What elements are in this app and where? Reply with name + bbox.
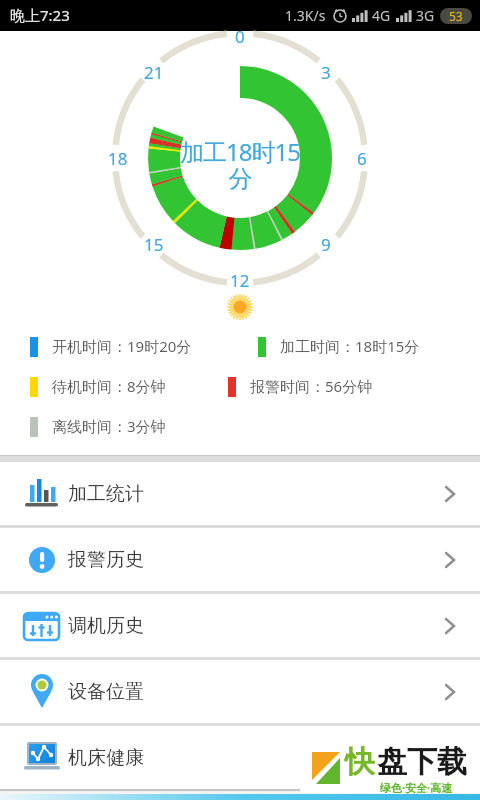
staticText: 1.3K/s xyxy=(285,6,326,25)
button[interactable]: 加工统计 xyxy=(0,462,480,525)
staticText: 加工18时15 分 xyxy=(180,135,300,194)
staticText: 报警历史 xyxy=(68,548,144,572)
staticText: 21 xyxy=(144,61,164,84)
staticText: 盘下载 xyxy=(377,743,467,781)
staticText: 开机时间：19时20分 xyxy=(52,336,192,356)
staticText: 快 xyxy=(345,743,375,781)
staticText: 待机时间：8分钟 xyxy=(52,376,166,396)
button[interactable]: 设备位置 xyxy=(0,660,480,723)
staticText: 18 xyxy=(108,147,128,170)
staticText: 报警时间：56分钟 xyxy=(250,376,373,396)
staticText: 调机历史 xyxy=(68,614,144,638)
staticText: 离线时间：3分钟 xyxy=(52,416,166,436)
staticText: 53 xyxy=(449,8,463,24)
staticText: 绿色·安全·高速 xyxy=(380,780,453,795)
button[interactable]: 报警历史 xyxy=(0,528,480,591)
staticText: 3 xyxy=(321,61,331,84)
staticText: 12 xyxy=(230,269,250,292)
button[interactable]: 调机历史 xyxy=(0,594,480,657)
staticText: 9 xyxy=(321,233,331,256)
staticText: 3G xyxy=(416,6,435,25)
button[interactable]: 机床健康 xyxy=(0,726,480,789)
staticText: 15 xyxy=(144,233,164,256)
staticText: 0 xyxy=(235,25,245,48)
staticText: 机床健康 xyxy=(68,746,144,770)
staticText: 加工时间：18时15分 xyxy=(280,336,420,356)
staticText: 设备位置 xyxy=(68,680,144,704)
staticText: 晚上7:23 xyxy=(10,5,70,25)
staticText: 4G xyxy=(372,6,391,25)
staticText: 加工统计 xyxy=(68,482,144,506)
staticText: 6 xyxy=(357,147,367,170)
